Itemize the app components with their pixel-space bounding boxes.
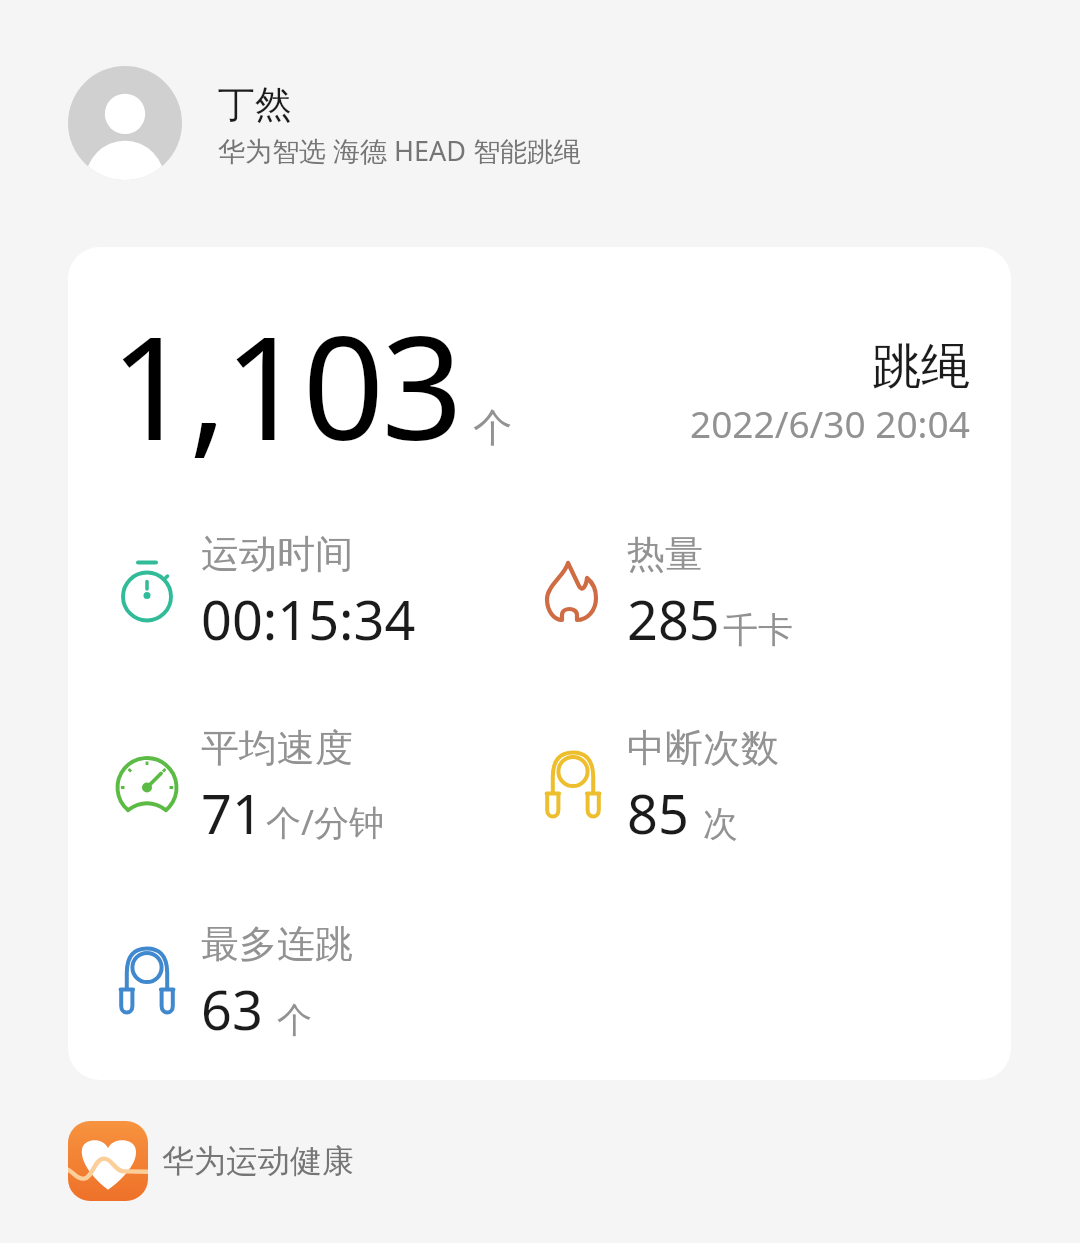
staticText: 跳绳 (872, 336, 970, 398)
button[interactable]: Profile picture (68, 66, 546, 180)
staticText: 个 (277, 998, 312, 1042)
staticText: 最多连跳 (201, 920, 353, 968)
staticText: 63 (201, 972, 263, 1046)
staticText: 运动时间 (201, 530, 353, 578)
staticText: 千卡 (723, 608, 793, 652)
other: Calories (537, 555, 609, 627)
staticText: 次 (703, 802, 738, 846)
staticText: 华为运动健康 (162, 1141, 354, 1181)
other: Jump rope (537, 749, 609, 821)
other: Average speed (111, 749, 183, 821)
staticText: 个/分钟 (266, 798, 385, 846)
staticText: 285 (627, 582, 720, 656)
staticText: 丁然 (218, 81, 292, 128)
staticText: 平均速度 (201, 724, 353, 772)
other: Profile picture (68, 66, 182, 180)
staticText: 中断次数 (627, 724, 779, 772)
staticText: 1,103 (110, 287, 460, 482)
staticText: 个 (473, 403, 512, 452)
staticText: 2022/6/30 20:04 (690, 398, 970, 448)
button[interactable]: 1,103 (68, 247, 1011, 1080)
staticText: 00:15:34 (201, 582, 416, 656)
staticText: 华为智选 海德 HEAD 智能跳绳 (218, 132, 582, 169)
staticText: 热量 (627, 530, 703, 578)
staticText: 71 (201, 776, 263, 850)
staticText: 85 (627, 776, 689, 850)
button[interactable]: 华为运动健康 (68, 1121, 340, 1201)
other: Jump rope (111, 945, 183, 1017)
other: Duration (111, 555, 183, 627)
